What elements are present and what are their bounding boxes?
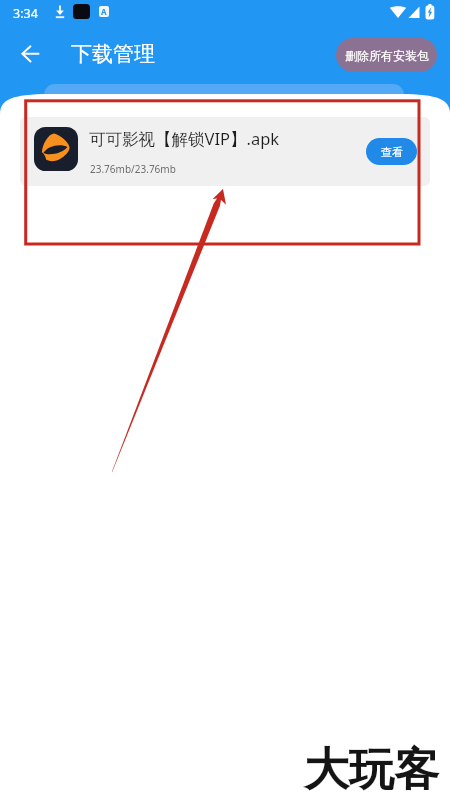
staticText: 大玩客 xyxy=(304,742,439,799)
staticText: 可可影视【解锁VIP】.apk xyxy=(89,127,280,150)
staticText: 下载管理 xyxy=(71,41,155,67)
button[interactable]: 可可影视【解锁VIP】.apk xyxy=(20,117,430,186)
staticText: A xyxy=(101,6,107,17)
button[interactable]: Back xyxy=(14,40,42,68)
staticText: 查看 xyxy=(381,145,403,159)
staticText: 3:34 xyxy=(13,5,38,22)
staticText: 23.76mb/23.76mb xyxy=(90,162,176,176)
button[interactable]: 删除所有安装包 xyxy=(336,38,437,72)
staticText: 删除所有安装包 xyxy=(345,48,429,63)
button[interactable]: 查看 xyxy=(366,138,417,165)
